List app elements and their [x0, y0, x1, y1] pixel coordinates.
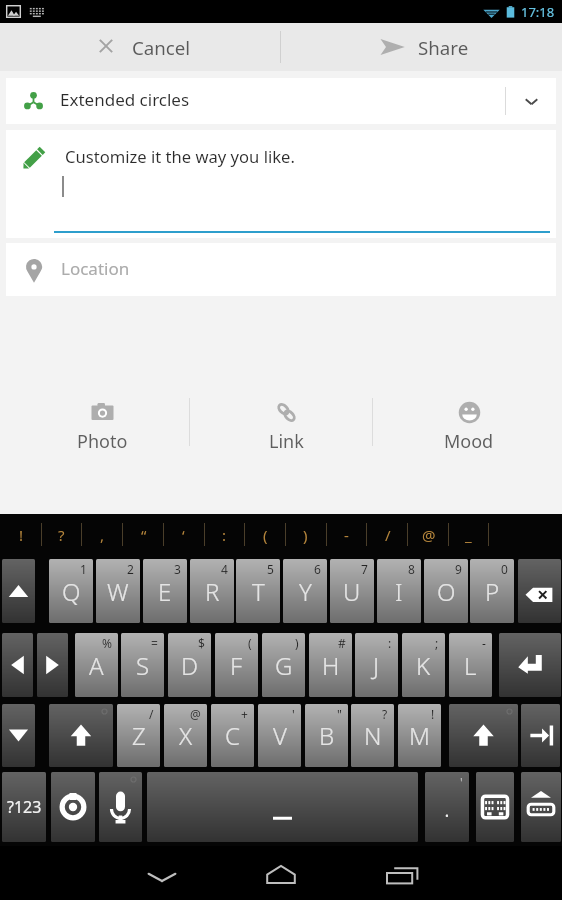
- button[interactable]: ): [285, 514, 326, 556]
- staticText: 3: [174, 561, 181, 577]
- staticText: /: [149, 706, 154, 722]
- button[interactable]: O: [424, 559, 468, 623]
- button[interactable]: mic: [99, 772, 142, 842]
- staticText: ': [460, 774, 463, 790]
- button[interactable]: up: [2, 559, 35, 623]
- staticText: !: [431, 706, 435, 722]
- button[interactable]: Change audience: [506, 78, 556, 124]
- button[interactable]: Home: [250, 851, 312, 899]
- button[interactable]: del: [518, 559, 561, 623]
- button[interactable]: grid: [476, 772, 514, 842]
- staticText: Cancel: [132, 35, 191, 60]
- button[interactable]: Recent apps: [370, 851, 432, 899]
- button[interactable]: !: [1, 514, 42, 556]
- button[interactable]: V: [258, 704, 301, 767]
- button[interactable]: ?: [41, 514, 82, 556]
- staticText: O: [437, 575, 456, 608]
- button[interactable]: J: [355, 633, 398, 697]
- staticText: ?: [382, 706, 388, 722]
- button[interactable]: Cancel: [0, 23, 280, 71]
- button[interactable]: enter: [499, 633, 561, 697]
- button[interactable]: Photo: [10, 395, 194, 451]
- staticText: Extended circles: [60, 88, 190, 111]
- staticText: ): [295, 635, 299, 651]
- button[interactable]: down: [2, 704, 35, 767]
- button[interactable]: L: [449, 633, 492, 697]
- staticText: B: [319, 719, 335, 752]
- button[interactable]: Link: [194, 395, 378, 451]
- button[interactable]: C: [211, 704, 254, 767]
- button[interactable]: tab: [521, 704, 560, 767]
- button[interactable]: -: [326, 514, 367, 556]
- button[interactable]: W: [96, 559, 140, 623]
- button[interactable]: /: [367, 514, 408, 556]
- button[interactable]: “: [123, 514, 164, 556]
- button[interactable]: F: [215, 633, 258, 697]
- button[interactable]: @: [408, 514, 449, 556]
- button[interactable]: Z: [117, 704, 160, 767]
- staticText: /: [385, 525, 391, 545]
- button[interactable]: Share: [281, 23, 562, 71]
- button[interactable]: Location: [6, 243, 556, 296]
- button[interactable]: ?123: [2, 772, 46, 842]
- button[interactable]: Mood: [377, 395, 561, 451]
- button[interactable]: :: [204, 514, 245, 556]
- button[interactable]: Q: [49, 559, 93, 623]
- button[interactable]: H: [309, 633, 352, 697]
- staticText: 5: [267, 561, 274, 577]
- staticText: ;: [435, 635, 439, 651]
- button[interactable]: P: [470, 559, 514, 623]
- staticText: ?123: [7, 796, 42, 818]
- button[interactable]: ,: [82, 514, 123, 556]
- button[interactable]: K: [402, 633, 445, 697]
- button[interactable]: (: [245, 514, 286, 556]
- button[interactable]: kbd: [521, 772, 561, 842]
- staticText: J: [373, 649, 380, 682]
- button[interactable]: X: [164, 704, 207, 767]
- button[interactable]: left: [2, 633, 33, 697]
- button[interactable]: T: [236, 559, 280, 623]
- staticText: I: [395, 575, 403, 608]
- staticText: =: [151, 635, 158, 651]
- staticText: A: [89, 649, 104, 682]
- button[interactable]: E: [143, 559, 187, 623]
- button[interactable]: space: [147, 772, 418, 842]
- button[interactable]: shift: [449, 704, 518, 767]
- button[interactable]: Hide keyboard: [131, 851, 193, 899]
- staticText: Photo: [77, 429, 128, 454]
- button[interactable]: ‘: [163, 514, 204, 556]
- button[interactable]: right: [37, 633, 68, 697]
- button[interactable]: _: [448, 514, 489, 556]
- staticText: C: [225, 719, 240, 752]
- button[interactable]: U: [330, 559, 374, 623]
- staticText: 1: [80, 561, 87, 577]
- button[interactable]: D: [168, 633, 211, 697]
- button[interactable]: R: [190, 559, 234, 623]
- button[interactable]: shift: [49, 704, 113, 767]
- button[interactable]: .: [425, 772, 469, 842]
- staticText: (: [248, 635, 252, 651]
- staticText: Location: [61, 257, 130, 280]
- staticText: Y: [299, 575, 312, 608]
- button[interactable]: I: [377, 559, 421, 623]
- staticText: T: [252, 575, 265, 608]
- staticText: -: [482, 635, 486, 651]
- button[interactable]: M: [398, 704, 441, 767]
- button[interactable]: B: [305, 704, 348, 767]
- staticText: !: [19, 525, 24, 545]
- button[interactable]: settings: [51, 772, 95, 842]
- staticText: _: [465, 525, 472, 545]
- button[interactable]: S: [121, 633, 164, 697]
- staticText: 0: [501, 561, 508, 577]
- button[interactable]: Y: [283, 559, 327, 623]
- button[interactable]: A: [75, 633, 118, 697]
- button[interactable]: N: [351, 704, 394, 767]
- staticText: L: [464, 649, 477, 682]
- staticText: Link: [269, 429, 304, 454]
- staticText: H: [322, 649, 340, 682]
- button[interactable]: G: [262, 633, 305, 697]
- staticText: 8: [408, 561, 415, 577]
- staticText: 17:18: [521, 3, 555, 21]
- staticText: “: [141, 525, 147, 545]
- button[interactable]: Extended circles: [6, 78, 556, 124]
